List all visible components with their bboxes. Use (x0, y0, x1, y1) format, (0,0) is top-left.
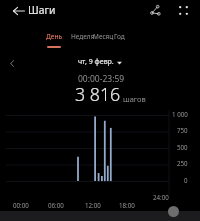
staticText: 0 (184, 176, 188, 184)
button[interactable]: Previous day (4, 55, 20, 71)
staticText: Месяц (93, 32, 114, 41)
staticText: шагов (123, 94, 146, 104)
staticText: 00:00-23:59 (78, 73, 125, 85)
staticText: Шаги (28, 3, 56, 17)
button[interactable]: чт, 9 февр. (78, 57, 200, 67)
staticText: 06:00 (48, 201, 64, 209)
button[interactable]: Share (144, 0, 166, 21)
button[interactable]: Scroll handle (168, 206, 179, 217)
staticText: 18:00 (119, 201, 135, 209)
staticText: 1 000 (172, 110, 188, 118)
staticText: День (46, 32, 63, 41)
button[interactable]: Неделя (71, 32, 95, 41)
button[interactable]: Back (7, 0, 31, 21)
staticText: чт, 9 февр. (78, 57, 114, 67)
staticText: 250 (177, 159, 188, 167)
staticText: 24:00 (153, 193, 169, 201)
button[interactable]: More options (172, 0, 194, 21)
staticText: 12:00 (85, 201, 101, 209)
button[interactable]: Год (114, 32, 125, 41)
staticText: 00:00 (13, 201, 29, 209)
staticText: Год (114, 32, 125, 41)
staticText: 500 (177, 143, 188, 151)
staticText: 3 816 (75, 82, 121, 106)
staticText: 750 (177, 126, 188, 134)
staticText: Неделя (71, 32, 95, 41)
button[interactable]: Месяц (93, 32, 114, 41)
button[interactable]: День (46, 32, 63, 41)
